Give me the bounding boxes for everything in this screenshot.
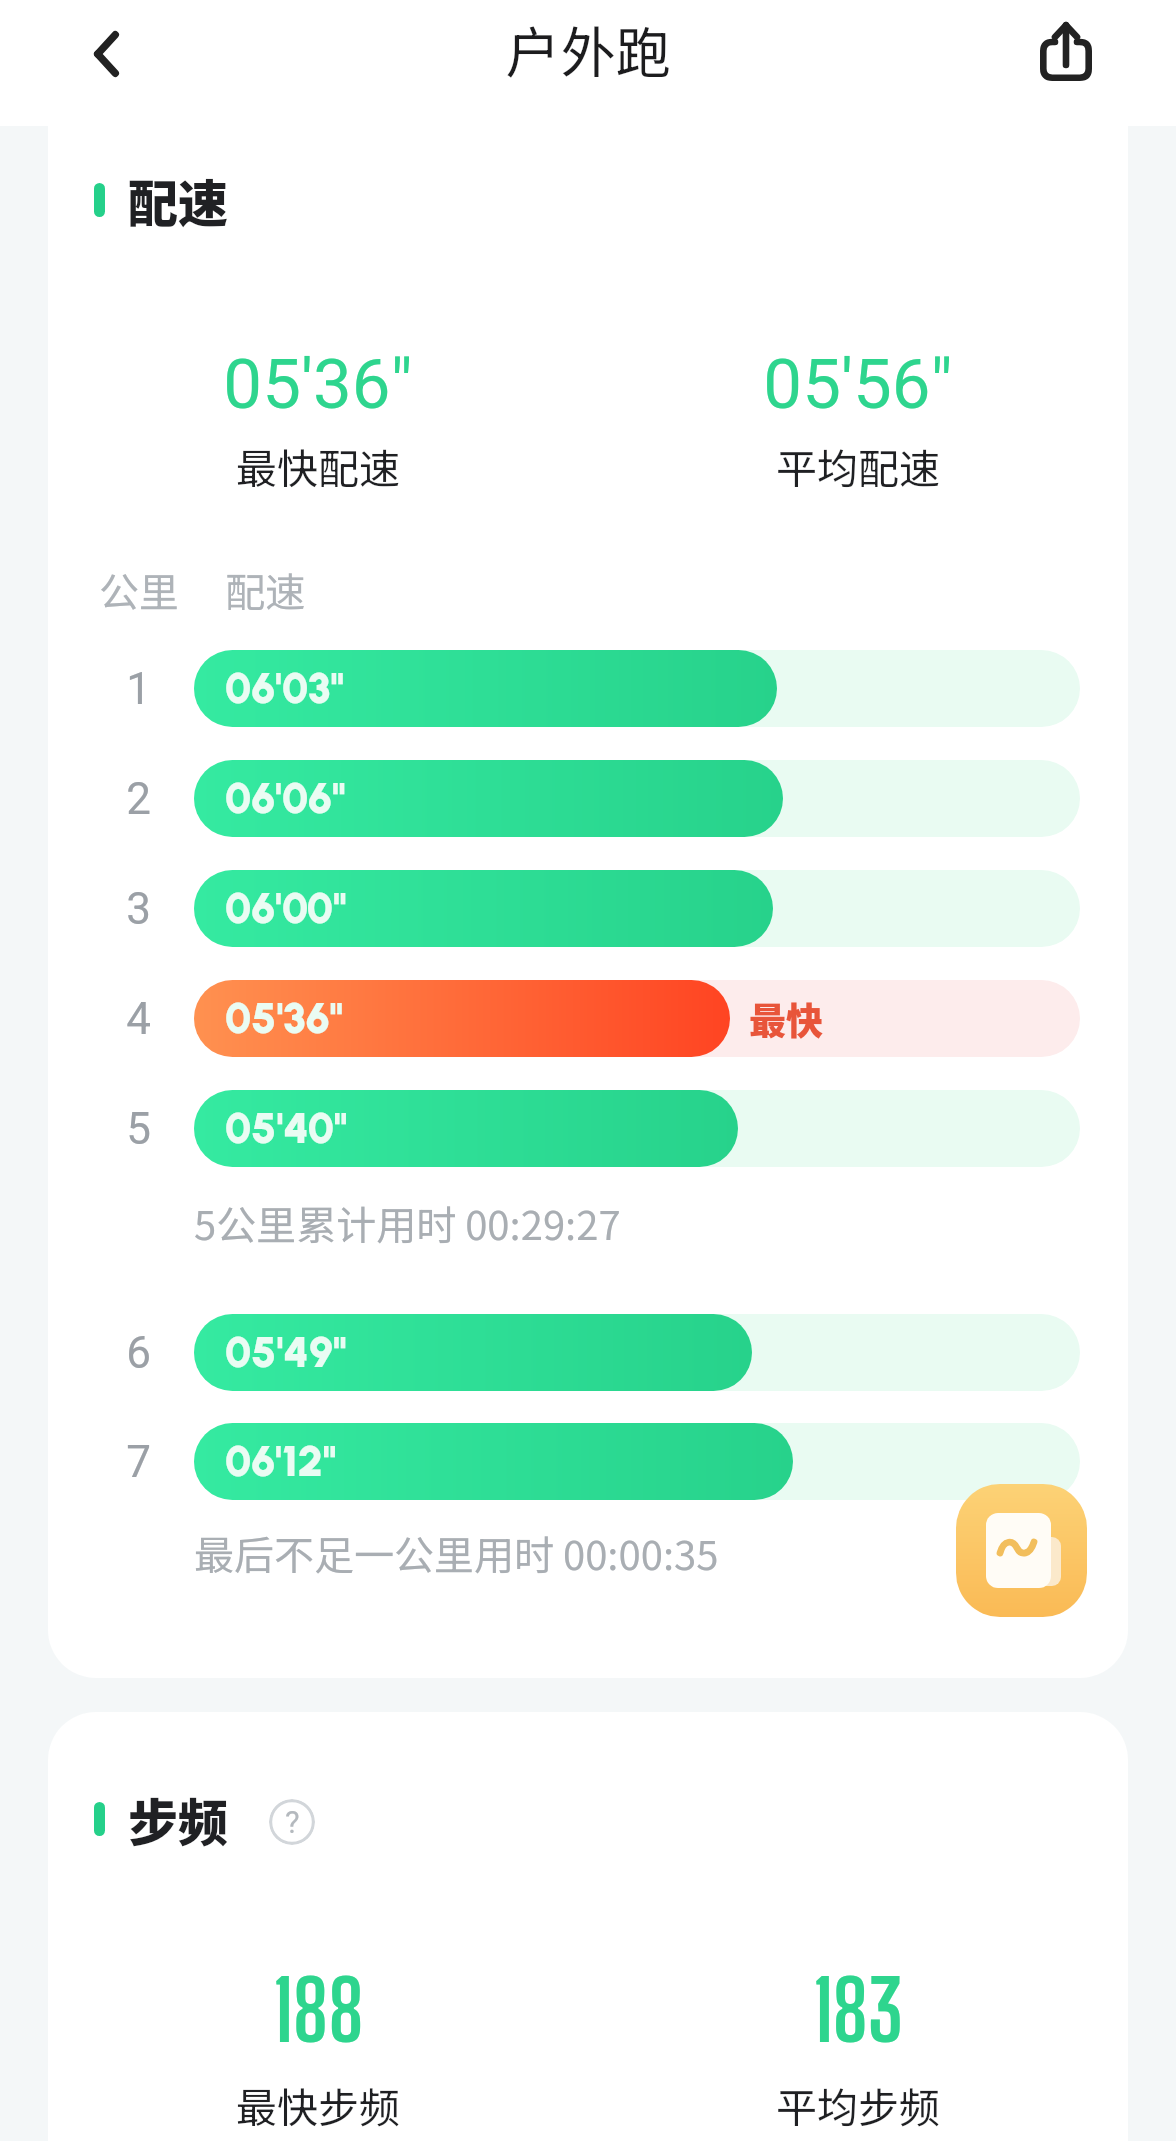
staticText: 最快 bbox=[749, 992, 823, 1046]
button[interactable]: Share bbox=[1020, 0, 1112, 100]
staticText: 2 bbox=[126, 773, 151, 825]
staticText: 步频 bbox=[128, 1783, 228, 1855]
staticText: 06'00" bbox=[225, 882, 347, 934]
staticText: 06'03" bbox=[225, 662, 345, 714]
staticText: 183 bbox=[813, 1961, 904, 2059]
staticText: 平均步频 bbox=[776, 2075, 940, 2134]
staticText: 3 bbox=[126, 883, 151, 935]
button[interactable]: Back bbox=[60, 8, 152, 100]
staticText: 05'40" bbox=[225, 1102, 348, 1154]
button[interactable]: Help bbox=[269, 1799, 315, 1845]
staticText: 05'36" bbox=[223, 344, 413, 425]
staticText: 5公里累计用时 00:29:27 bbox=[194, 1194, 621, 1252]
button[interactable]: Notes bbox=[956, 1484, 1087, 1617]
staticText: 户外跑 bbox=[505, 9, 671, 89]
staticText: 188 bbox=[273, 1961, 364, 2059]
staticText: 6 bbox=[126, 1327, 151, 1379]
staticText: 配速 bbox=[128, 164, 228, 236]
staticText: 06'06" bbox=[225, 772, 346, 824]
staticText: 5 bbox=[126, 1103, 151, 1155]
staticText: 1 bbox=[126, 663, 151, 715]
staticText: 最快配速 bbox=[236, 436, 400, 495]
staticText: 7 bbox=[126, 1436, 151, 1488]
staticText: ? bbox=[285, 1804, 300, 1840]
staticText: 05'56" bbox=[763, 344, 953, 425]
staticText: 配速 bbox=[225, 561, 305, 619]
staticText: 最后不足一公里用时 00:00:35 bbox=[194, 1524, 719, 1582]
staticText: 06'12" bbox=[225, 1435, 337, 1487]
staticText: 公里 bbox=[99, 561, 179, 619]
staticText: 最快步频 bbox=[236, 2075, 400, 2134]
staticText: 05'36" bbox=[225, 992, 344, 1044]
staticText: 4 bbox=[126, 993, 151, 1045]
staticText: 05'49" bbox=[225, 1326, 347, 1378]
staticText: 平均配速 bbox=[776, 436, 940, 495]
